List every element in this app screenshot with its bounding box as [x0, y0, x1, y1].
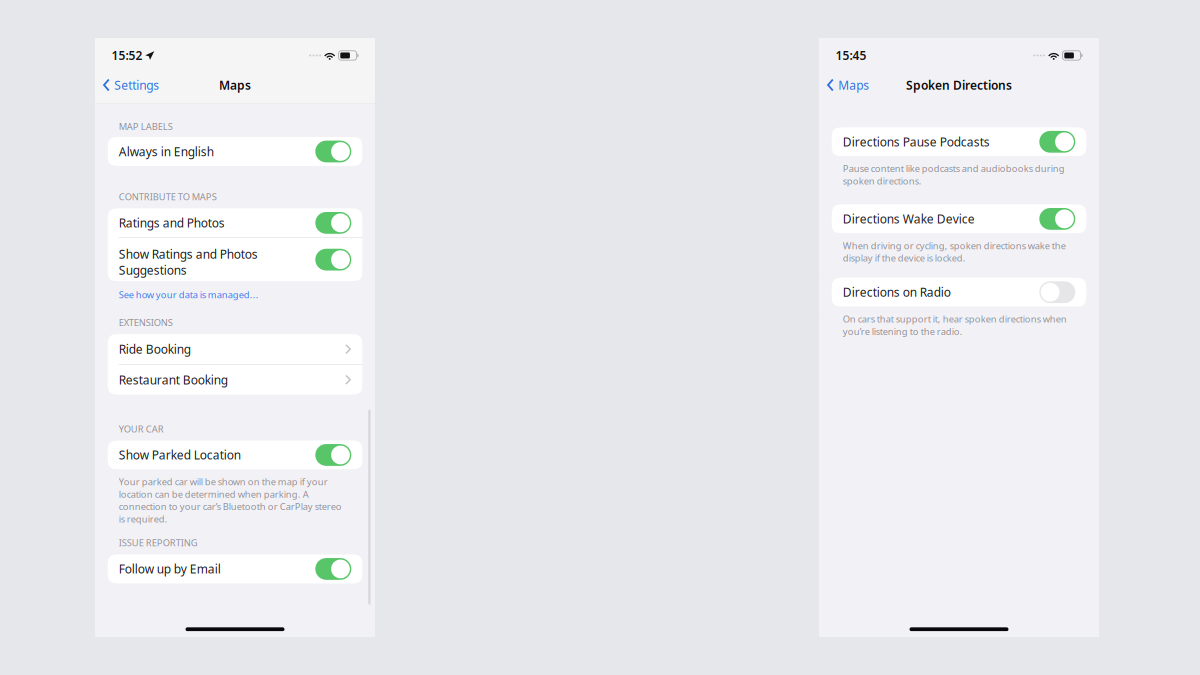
staticText: When driving or cycling, spoken directio… — [843, 239, 1066, 264]
staticText: Directions on Radio — [843, 284, 951, 300]
staticText: See how your data is managed... — [119, 288, 259, 301]
button[interactable]: Show Ratings and Photos Suggestions — [108, 238, 362, 281]
button[interactable]: Directions Pause Podcasts — [832, 127, 1086, 156]
staticText: CONTRIBUTE TO MAPS — [119, 190, 217, 203]
button[interactable]: Maps — [819, 73, 875, 97]
staticText: Show Ratings and Photos Suggestions — [119, 246, 258, 278]
staticText: Settings — [114, 77, 159, 93]
staticText: Directions Pause Podcasts — [843, 134, 990, 150]
button[interactable]: Directions on Radio — [832, 278, 1086, 307]
staticText: On cars that support it, hear spoken dir… — [843, 313, 1067, 337]
staticText: Your parked car will be shown on the map… — [119, 475, 342, 525]
staticText: EXTENSIONS — [119, 316, 173, 329]
staticText: Pause content like podcasts and audioboo… — [843, 162, 1065, 187]
staticText: Directions Wake Device — [843, 211, 975, 227]
staticText: Follow up by Email — [119, 561, 221, 577]
button[interactable]: Settings — [95, 73, 165, 97]
button[interactable]: Always in English — [108, 137, 362, 166]
staticText: Restaurant Booking — [119, 372, 228, 388]
staticText: Spoken Directions — [906, 77, 1012, 93]
staticText: Maps — [219, 77, 251, 93]
staticText: ISSUE REPORTING — [119, 536, 198, 549]
button[interactable]: Ride Booking — [108, 334, 362, 364]
button[interactable]: Ratings and Photos — [108, 208, 362, 237]
staticText: Maps — [838, 77, 869, 93]
staticText: Show Parked Location — [119, 447, 241, 463]
button[interactable]: See how your data is managed... — [95, 288, 375, 301]
staticText: Ride Booking — [119, 341, 191, 357]
staticText: 15:52 — [111, 47, 142, 63]
button[interactable]: Directions Wake Device — [832, 204, 1086, 233]
button[interactable]: Follow up by Email — [108, 554, 362, 583]
button[interactable]: Restaurant Booking — [108, 365, 362, 395]
staticText: Ratings and Photos — [119, 215, 225, 231]
staticText: MAP LABELS — [119, 120, 173, 132]
button[interactable]: Show Parked Location — [108, 440, 362, 469]
staticText: YOUR CAR — [119, 423, 164, 435]
staticText: Always in English — [119, 143, 214, 159]
staticText: 15:45 — [835, 47, 866, 63]
